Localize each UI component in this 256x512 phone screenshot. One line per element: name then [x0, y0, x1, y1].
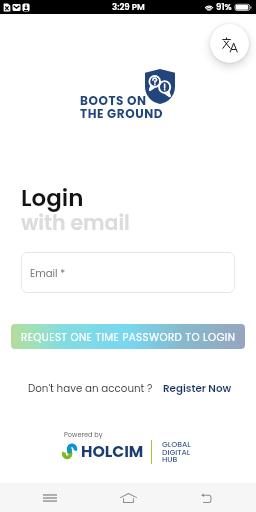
staticText: Don't have an account ?: [28, 381, 153, 395]
staticText: BOOTS ON: [80, 92, 147, 109]
button[interactable]: REQUEST ONE TIME PASSWORD TO LOGIN: [11, 324, 245, 349]
staticText: Powered by: [64, 430, 103, 439]
button[interactable]: Email *: [21, 252, 235, 293]
staticText: Register Now: [163, 381, 232, 395]
staticText: DIGITAL: [162, 447, 191, 458]
staticText: GLOBAL: [162, 439, 191, 450]
button[interactable]: Recent apps: [33, 483, 67, 512]
button[interactable]: Home: [111, 483, 145, 512]
staticText: REQUEST ONE TIME PASSWORD TO LOGIN: [21, 330, 236, 344]
button[interactable]: Register Now: [163, 381, 232, 395]
staticText: THE GROUND: [80, 105, 164, 122]
staticText: with email: [21, 208, 130, 237]
button[interactable]: Back: [189, 483, 223, 512]
staticText: HUB: [162, 454, 178, 465]
staticText: HOLCIM: [81, 440, 144, 462]
staticText: 3:29 PM: [112, 1, 145, 13]
staticText: Email *: [30, 266, 66, 280]
staticText: Login: [21, 182, 84, 214]
staticText: 91%: [216, 1, 232, 13]
button[interactable]: Change language: [210, 24, 249, 63]
